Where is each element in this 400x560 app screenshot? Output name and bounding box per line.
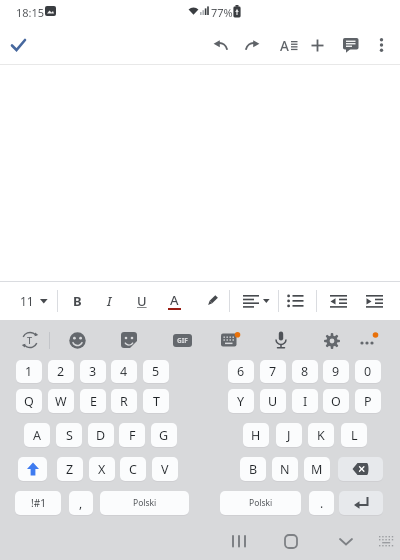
button[interactable]: Z [57,457,83,481]
button[interactable]: GIF [173,334,192,347]
staticText: R [120,393,128,410]
staticText: D [96,427,106,444]
button[interactable] [360,332,379,349]
button[interactable]: V [152,457,178,481]
button[interactable] [343,38,359,53]
button[interactable]: Y [228,389,254,413]
button[interactable]: Polski [220,491,301,515]
staticText: C [129,461,137,478]
button[interactable] [10,38,27,52]
button[interactable] [366,295,384,308]
button[interactable] [244,39,261,51]
staticText: G [159,427,169,444]
button[interactable]: 3 [80,360,106,383]
staticText: X [98,461,106,478]
button[interactable]: R [111,389,137,413]
button[interactable]: 2 [48,360,74,383]
staticText: Polski [249,497,273,509]
staticText: , [79,495,83,511]
button[interactable]: P [355,389,381,413]
button[interactable] [221,332,241,349]
button[interactable] [291,41,298,51]
button[interactable]: 4 [111,360,137,383]
button[interactable] [212,39,229,51]
button[interactable]: 9 [323,360,349,383]
button[interactable]: D [88,423,114,447]
button[interactable] [233,5,241,18]
button[interactable]: . [309,491,334,515]
button[interactable] [204,293,220,309]
button[interactable]: C [120,457,146,481]
button[interactable] [45,6,56,16]
button[interactable]: S [56,423,82,447]
staticText: Z [66,461,74,478]
button[interactable]: T [21,331,39,349]
button[interactable] [200,6,209,15]
button[interactable]: M [304,457,330,481]
button[interactable] [263,299,270,304]
button[interactable] [18,457,47,481]
button[interactable]: T [143,389,169,413]
button[interactable] [311,39,324,52]
button[interactable] [243,295,261,308]
staticText: P [364,393,372,410]
staticText: . [320,495,324,511]
button[interactable]: F [119,423,145,447]
button[interactable]: J [276,423,302,447]
staticText: W [55,393,67,410]
staticText: V [161,461,169,478]
button[interactable]: Q [16,389,42,413]
button[interactable] [339,538,353,546]
button[interactable]: A [24,423,50,447]
button[interactable] [274,331,288,350]
button[interactable]: I [292,389,318,413]
button[interactable]: L [341,423,367,447]
button[interactable]: 0 [355,360,381,383]
staticText: 1 [25,363,33,380]
button[interactable]: Polski [100,491,189,515]
staticText: J [287,427,291,444]
button[interactable] [323,332,341,350]
button[interactable] [287,295,305,308]
button[interactable]: 5 [143,360,169,383]
staticText: !#1 [31,496,46,510]
button[interactable]: , [69,491,93,515]
button[interactable]: G [151,423,177,447]
staticText: 3 [89,363,97,380]
button[interactable]: 7 [260,360,286,383]
button[interactable]: H [243,423,269,447]
button[interactable]: O [323,389,349,413]
staticText: E [90,393,97,410]
button[interactable]: 8 [292,360,318,383]
button[interactable] [188,6,199,15]
button[interactable] [330,295,348,308]
button[interactable]: E [80,389,106,413]
staticText: B [73,292,82,310]
button[interactable]: !#1 [15,491,61,515]
button[interactable] [339,491,383,515]
button[interactable]: B [240,457,266,481]
button[interactable]: 6 [228,360,254,383]
staticText: O [331,393,341,410]
staticText: S [66,427,73,444]
staticText: Polski [133,497,157,509]
button[interactable] [232,535,247,548]
staticText: N [280,461,290,478]
button[interactable]: N [272,457,298,481]
staticText: T [153,393,160,410]
button[interactable] [379,536,395,547]
button[interactable] [284,534,298,549]
button[interactable]: 1 [16,360,42,383]
staticText: 8 [301,363,309,380]
staticText: I [107,292,112,310]
button[interactable]: K [308,423,334,447]
button[interactable] [379,38,384,52]
button[interactable] [69,332,86,349]
button[interactable] [121,332,137,348]
staticText: I [303,393,308,410]
button[interactable]: W [48,389,74,413]
button[interactable]: U [260,389,286,413]
button[interactable]: X [89,457,115,481]
button[interactable] [338,457,383,481]
button[interactable] [40,299,48,304]
